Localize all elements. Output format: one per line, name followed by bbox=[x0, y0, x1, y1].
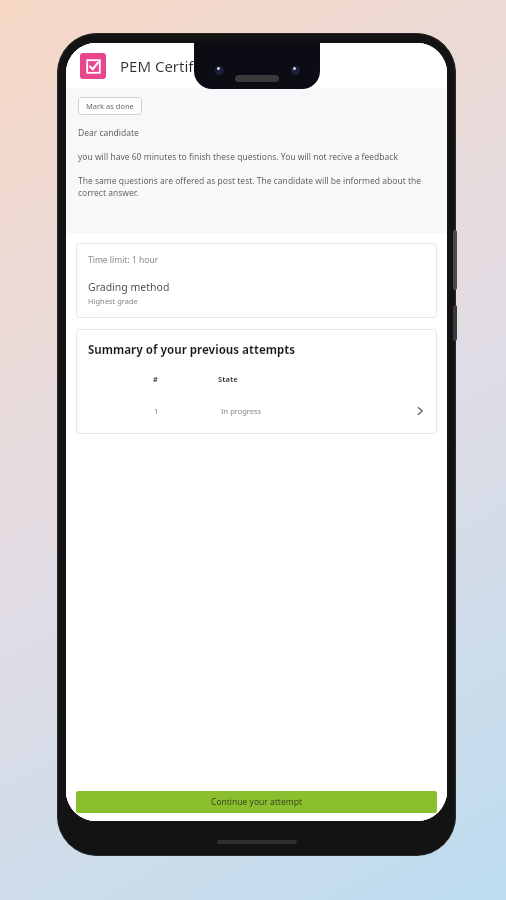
button[interactable]: Mark as done bbox=[78, 97, 142, 115]
staticText: # bbox=[153, 374, 158, 384]
staticText: The same questions are offered as post t… bbox=[78, 175, 435, 199]
staticText: Dear candidate bbox=[78, 127, 139, 139]
staticText: In progress bbox=[221, 406, 262, 416]
staticText: 1 bbox=[154, 406, 159, 416]
other: Open attempt bbox=[411, 402, 429, 420]
button[interactable]: Assignment icon bbox=[80, 53, 106, 79]
staticText: you will have 60 minutes to finish these… bbox=[78, 151, 398, 163]
staticText: PEM Certificate bbox=[120, 56, 227, 76]
button[interactable]: 1 bbox=[76, 402, 437, 420]
staticText: Grading method bbox=[88, 280, 170, 294]
button[interactable]: Continue your attempt bbox=[76, 791, 437, 813]
staticText: Highest grade bbox=[88, 296, 138, 306]
staticText: Mark as done bbox=[86, 101, 134, 111]
staticText: Time limit: 1 hour bbox=[88, 254, 159, 266]
staticText: State bbox=[218, 374, 238, 384]
staticText: Summary of your previous attempts bbox=[88, 342, 296, 358]
staticText: Continue your attempt bbox=[211, 796, 302, 808]
